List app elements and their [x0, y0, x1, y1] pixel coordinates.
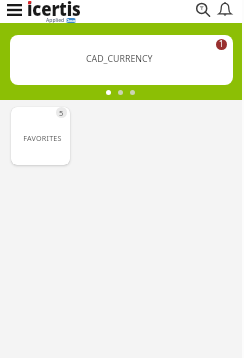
- button[interactable]: Search: [190, 0, 212, 19]
- staticText: 5: [59, 108, 64, 118]
- staticText: Cloud: [66, 18, 76, 23]
- button[interactable]: FAVORITES: [11, 107, 70, 165]
- staticText: Applied: [46, 17, 65, 24]
- button[interactable]: Menu: [2, 0, 26, 20]
- staticText: CAD_CURRENCY: [86, 53, 153, 65]
- staticText: FAVORITES: [23, 133, 62, 143]
- button[interactable]: Notifications: [214, 0, 236, 19]
- staticText: 1: [219, 39, 224, 49]
- staticText: icertis: [27, 0, 81, 19]
- button[interactable]: CAD_CURRENCY: [10, 35, 233, 85]
